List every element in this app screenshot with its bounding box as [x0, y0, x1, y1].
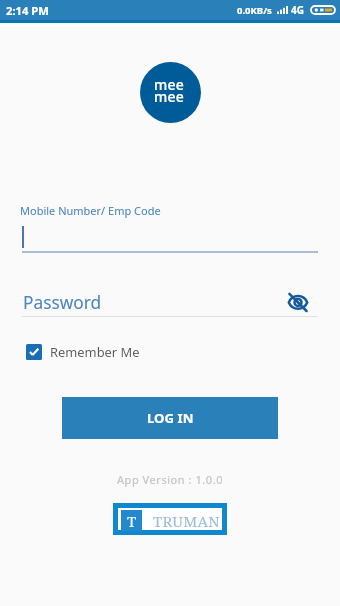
- staticText: 4G: [291, 3, 304, 17]
- button[interactable]: LOG IN: [62, 397, 278, 439]
- button[interactable]: Show password: [288, 292, 308, 312]
- staticText: App Version : 1.0.0: [117, 472, 223, 487]
- staticText: 0.0KB/s: [237, 4, 272, 17]
- staticText: Mobile Number/ Emp Code: [20, 203, 161, 218]
- button[interactable]: Remember Me: [26, 343, 140, 361]
- staticText: LOG IN: [147, 409, 194, 427]
- staticText: T: [127, 511, 137, 531]
- staticText: Remember Me: [50, 343, 140, 361]
- staticText: TRUMAN: [153, 511, 220, 531]
- staticText: Password: [23, 291, 102, 315]
- staticText: mee mee: [154, 75, 184, 107]
- button[interactable]: Truman: [118, 508, 222, 530]
- staticText: 2:14 PM: [6, 3, 49, 18]
